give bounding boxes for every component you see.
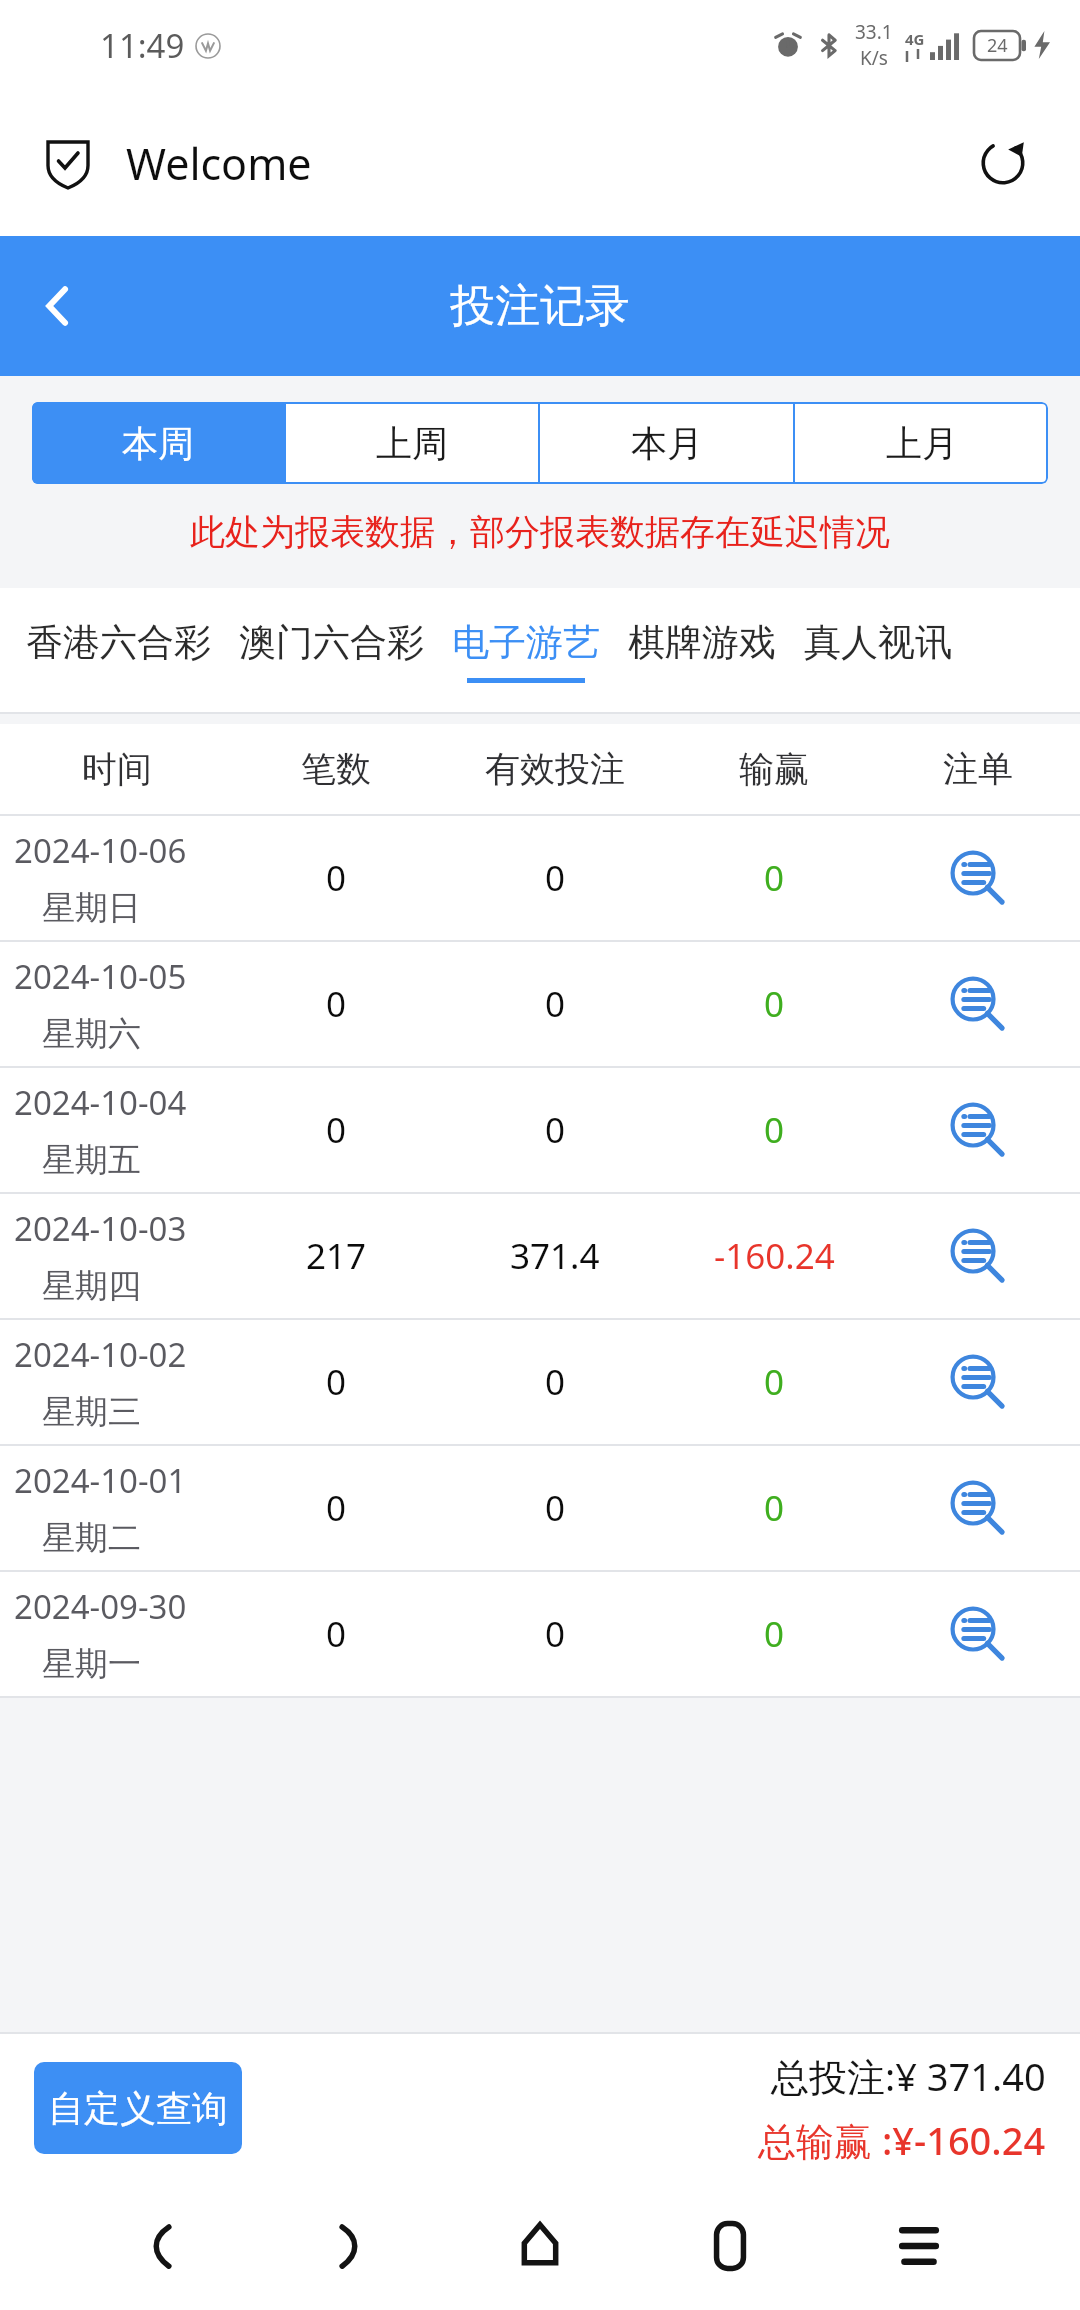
staticText: 33.1 xyxy=(855,19,893,45)
staticText: 0 xyxy=(326,1484,347,1532)
staticText: 上月 xyxy=(886,421,958,466)
staticText: 时间 xyxy=(82,747,152,791)
staticText: 0 xyxy=(326,1610,347,1658)
button[interactable]: Refresh xyxy=(966,126,1040,200)
staticText: 有效投注 xyxy=(485,747,625,791)
staticText: 0 xyxy=(764,980,785,1028)
staticText: 总输赢 :¥-160.24 xyxy=(758,2114,1046,2166)
staticText: 星期三 xyxy=(42,1391,141,1433)
staticText: -160.24 xyxy=(714,1232,835,1280)
staticText: Welcome xyxy=(126,134,312,193)
staticText: 0 xyxy=(545,1610,566,1658)
button[interactable]: 棋牌游戏 xyxy=(614,588,790,714)
button[interactable]: View bet details xyxy=(876,1446,1080,1570)
staticText: 0 xyxy=(326,980,347,1028)
staticText: 0 xyxy=(545,854,566,902)
button[interactable]: Menu xyxy=(864,2191,974,2301)
staticText: K/s xyxy=(860,45,888,71)
staticText: 0 xyxy=(326,1358,347,1406)
staticText: 0 xyxy=(545,1358,566,1406)
staticText: 星期日 xyxy=(42,887,141,929)
staticText: 输赢 xyxy=(739,747,809,791)
staticText: 0 xyxy=(545,980,566,1028)
staticText: 2024-09-30 xyxy=(14,1584,187,1629)
button[interactable]: Forward xyxy=(295,2191,405,2301)
button[interactable]: View bet details xyxy=(876,1572,1080,1696)
staticText: 0 xyxy=(545,1106,566,1154)
staticText: 星期五 xyxy=(42,1139,141,1181)
staticText: 星期六 xyxy=(42,1013,141,1055)
button[interactable]: 2024-09-30 xyxy=(0,1572,1080,1698)
button[interactable]: View bet details xyxy=(876,1320,1080,1444)
staticText: 棋牌游戏 xyxy=(628,619,776,666)
button[interactable]: Secure xyxy=(40,135,96,191)
button[interactable]: 2024-10-06 xyxy=(0,816,1080,942)
staticText: 真人视讯 xyxy=(804,619,952,666)
staticText: 香港六合彩 xyxy=(26,619,211,666)
staticText: 投注记录 xyxy=(450,278,630,335)
staticText: 星期四 xyxy=(42,1265,141,1307)
staticText: 自定义查询 xyxy=(48,2086,228,2131)
staticText: 注单 xyxy=(943,747,1013,791)
button[interactable]: Tabs xyxy=(675,2191,785,2301)
staticText: 11:49 xyxy=(100,23,185,68)
button[interactable]: 2024-10-02 xyxy=(0,1320,1080,1446)
staticText: 0 xyxy=(326,1106,347,1154)
button[interactable]: 香港六合彩 xyxy=(12,588,225,714)
staticText: 本周 xyxy=(122,421,194,466)
staticText: 此处为报表数据，部分报表数据存在延迟情况 xyxy=(190,510,890,554)
staticText: 0 xyxy=(764,1484,785,1532)
button[interactable]: 自定义查询 xyxy=(34,2062,242,2154)
staticText: 总投注:¥ 371.40 xyxy=(771,2050,1046,2102)
staticText: 电子游艺 xyxy=(452,619,600,666)
button[interactable]: 2024-10-05 xyxy=(0,942,1080,1068)
staticText: 24 xyxy=(987,33,1008,58)
staticText: 371.4 xyxy=(510,1232,600,1280)
button[interactable]: View bet details xyxy=(876,1194,1080,1318)
staticText: 上周 xyxy=(376,421,448,466)
staticText: 2024-10-03 xyxy=(14,1206,187,1251)
staticText: 2024-10-05 xyxy=(14,954,187,999)
staticText: 0 xyxy=(545,1484,566,1532)
staticText: 0 xyxy=(326,854,347,902)
button[interactable]: 2024-10-04 xyxy=(0,1068,1080,1194)
button[interactable]: 本周 xyxy=(32,402,284,484)
staticText: 4G xyxy=(905,29,925,49)
staticText: 217 xyxy=(306,1232,367,1280)
staticText: 0 xyxy=(764,1106,785,1154)
staticText: 0 xyxy=(764,1358,785,1406)
staticText: 本月 xyxy=(631,421,703,466)
staticText: 0 xyxy=(764,1610,785,1658)
button[interactable]: 电子游艺 xyxy=(438,588,614,714)
staticText: 2024-10-04 xyxy=(14,1080,187,1125)
button[interactable]: Back xyxy=(18,266,98,346)
staticText: 星期一 xyxy=(42,1643,141,1685)
staticText: 0 xyxy=(764,854,785,902)
staticText: 星期二 xyxy=(42,1517,141,1559)
staticText: 笔数 xyxy=(301,747,371,791)
button[interactable]: Back xyxy=(106,2191,216,2301)
button[interactable]: 本月 xyxy=(540,402,793,484)
button[interactable]: 上周 xyxy=(286,402,538,484)
button[interactable]: View bet details xyxy=(876,1068,1080,1192)
button[interactable]: 2024-10-03 xyxy=(0,1194,1080,1320)
staticText: 2024-10-06 xyxy=(14,828,187,873)
button[interactable]: 真人视讯 xyxy=(790,588,966,714)
staticText: 澳门六合彩 xyxy=(239,619,424,666)
button[interactable]: Home xyxy=(485,2191,595,2301)
staticText: 2024-10-02 xyxy=(14,1332,187,1377)
button[interactable]: 澳门六合彩 xyxy=(225,588,438,714)
staticText: 2024-10-01 xyxy=(14,1458,187,1503)
button[interactable]: View bet details xyxy=(876,816,1080,940)
button[interactable]: 上月 xyxy=(795,402,1048,484)
button[interactable]: View bet details xyxy=(876,942,1080,1066)
button[interactable]: 2024-10-01 xyxy=(0,1446,1080,1572)
